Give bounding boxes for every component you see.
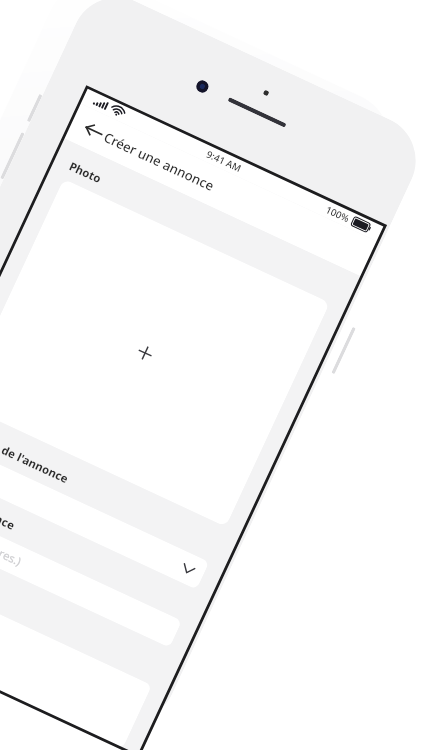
button[interactable] (0, 438, 209, 590)
staticText: Catégorie de l'annonce (0, 417, 71, 487)
staticText: 9:41 AM (204, 147, 244, 175)
staticText: 100% (324, 203, 352, 225)
staticText: Titre de l'annonce (0, 476, 18, 533)
staticText: Créer une annonce (101, 128, 217, 195)
button[interactable]: Back (77, 114, 110, 147)
button[interactable]: Nourriture (0, 533, 165, 672)
button[interactable]: (max. 50 caractères.) (0, 497, 182, 648)
button[interactable]: (max. 500 caractères.) (0, 561, 152, 749)
staticText: Photo (67, 158, 104, 187)
staticText: (max. 50 caractères.) (0, 508, 24, 569)
button[interactable]: Ajouter une photo (0, 179, 330, 527)
